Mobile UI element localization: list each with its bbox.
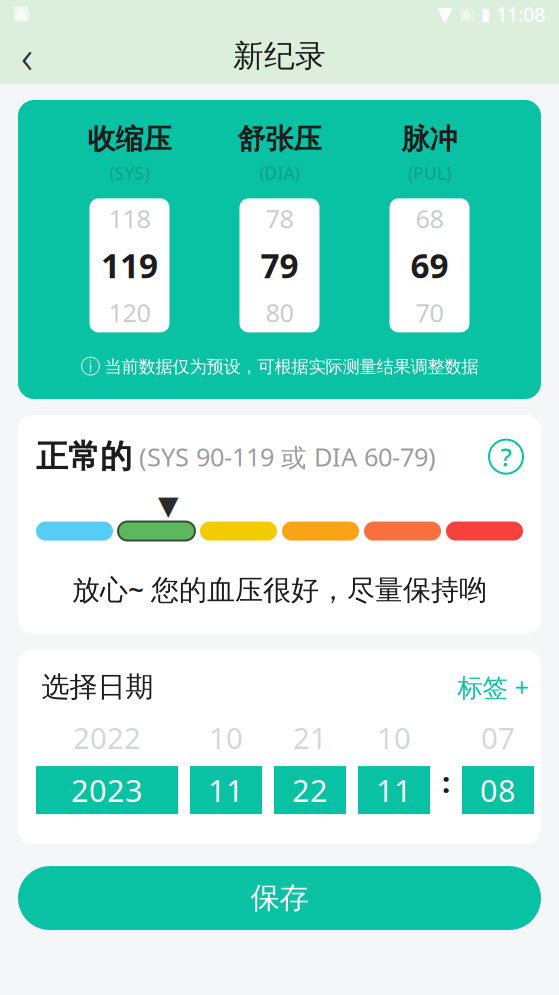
staticText: 2022 bbox=[73, 718, 141, 757]
staticText: ▼ bbox=[437, 3, 452, 25]
staticText: 标签 + bbox=[457, 670, 528, 704]
staticText: 69 bbox=[410, 243, 448, 288]
staticText: 120 bbox=[108, 295, 150, 329]
staticText: 放心~ 您的血压很好，尽量保持哟 bbox=[72, 570, 487, 608]
button[interactable]: 10 bbox=[190, 718, 262, 814]
staticText: (DIA) bbox=[259, 161, 299, 184]
staticText: ⓘ bbox=[80, 354, 100, 379]
button[interactable]: 21 bbox=[274, 718, 346, 814]
staticText: 保存 bbox=[250, 880, 308, 916]
staticText: 脉冲 bbox=[401, 122, 457, 156]
staticText: 119 bbox=[101, 243, 158, 288]
staticText: 80 bbox=[265, 295, 293, 329]
staticText: ▼ bbox=[158, 490, 179, 521]
staticText: 正常的 bbox=[36, 437, 132, 476]
button[interactable]: 68 bbox=[389, 198, 469, 332]
button[interactable]: 07 bbox=[462, 718, 534, 814]
staticText: 舒张压 bbox=[237, 122, 321, 156]
button[interactable]: Help about blood pressure levels bbox=[489, 440, 523, 474]
staticText: A bbox=[17, 5, 26, 23]
staticText: (SYS) bbox=[109, 161, 149, 184]
staticText: 70 bbox=[415, 295, 443, 329]
staticText: 当前数据仅为预设，可根据实际测量结果调整数据 bbox=[104, 356, 478, 377]
staticText: 79 bbox=[260, 243, 298, 288]
button[interactable]: 保存 bbox=[18, 866, 541, 930]
staticText: 118 bbox=[108, 202, 150, 235]
staticText: 22 bbox=[292, 770, 328, 810]
staticText: 11 bbox=[376, 770, 412, 810]
staticText: : bbox=[442, 762, 450, 801]
staticText: 21 bbox=[293, 718, 327, 757]
button[interactable]: Back bbox=[0, 29, 54, 83]
staticText: 新纪录 bbox=[233, 37, 326, 75]
staticText: 07 bbox=[481, 718, 515, 757]
staticText: 68 bbox=[415, 202, 443, 235]
staticText: (PUL) bbox=[408, 161, 451, 184]
button[interactable]: 78 bbox=[239, 198, 319, 332]
staticText: ? bbox=[500, 440, 511, 473]
staticText: 收缩压 bbox=[87, 122, 171, 156]
staticText: 78 bbox=[265, 202, 293, 235]
button[interactable]: 10 bbox=[358, 718, 430, 814]
staticText: 10 bbox=[209, 718, 243, 757]
staticText: (SYS 90-119 或 DIA 60-79) bbox=[132, 440, 436, 473]
staticText: 11:08 bbox=[496, 1, 545, 27]
staticText: 08 bbox=[480, 770, 516, 810]
button[interactable]: 2022 bbox=[36, 718, 178, 814]
staticText: 10 bbox=[377, 718, 411, 757]
staticText: ‹ bbox=[21, 26, 33, 86]
staticText: ▮ bbox=[481, 4, 491, 24]
staticText: 11 bbox=[208, 770, 244, 810]
staticText: ▣ bbox=[459, 5, 474, 23]
button[interactable]: 118 bbox=[89, 198, 169, 332]
staticText: 选择日期 bbox=[41, 670, 153, 704]
staticText: 2023 bbox=[71, 770, 143, 810]
button[interactable]: 标签 + bbox=[457, 670, 528, 704]
